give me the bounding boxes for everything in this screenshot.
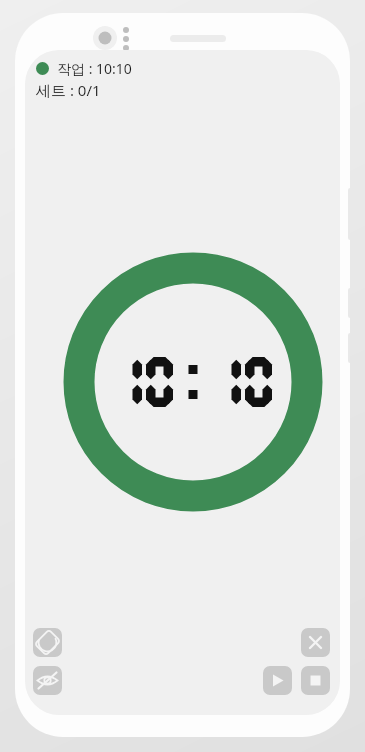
button[interactable]: Stop bbox=[301, 666, 330, 695]
staticText: 작업 : 10:10 bbox=[57, 59, 132, 78]
staticText: 세트 : 0/1 bbox=[36, 80, 101, 100]
button[interactable]: Close bbox=[301, 628, 330, 657]
button[interactable]: Play bbox=[263, 666, 292, 695]
button[interactable]: Hide bbox=[33, 666, 62, 695]
button[interactable]: Rotate screen bbox=[33, 628, 62, 657]
